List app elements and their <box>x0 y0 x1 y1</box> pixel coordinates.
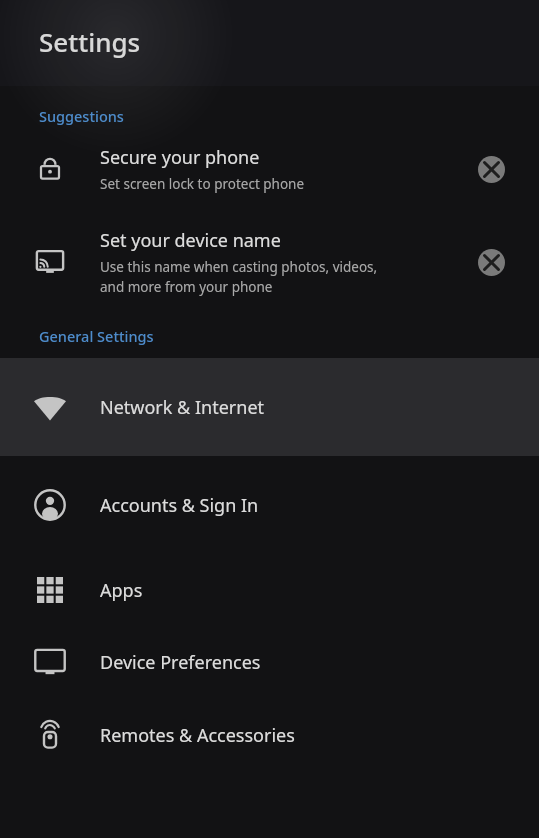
other: Cast device name <box>0 212 100 312</box>
button[interactable]: Apps <box>0 554 539 626</box>
staticText: General Settings <box>39 326 154 346</box>
button[interactable]: Device Preferences <box>0 626 539 698</box>
staticText: Set screen lock to protect phone <box>100 175 305 193</box>
staticText: Remotes & Accessories <box>100 723 295 748</box>
button[interactable]: Dismiss suggestion <box>443 126 539 212</box>
staticText: Apps <box>100 578 143 603</box>
button[interactable]: Cast device name <box>0 212 539 312</box>
staticText: Use this name when casting photos, video… <box>100 258 378 296</box>
button[interactable]: Screen lock <box>0 126 539 212</box>
button[interactable]: Network & Internet <box>0 358 539 456</box>
other: Screen lock <box>0 126 100 212</box>
button[interactable]: Remotes & Accessories <box>0 698 539 772</box>
staticText: Set your device name <box>100 228 281 253</box>
staticText: Device Preferences <box>100 650 261 675</box>
staticText: Suggestions <box>39 106 124 126</box>
staticText: Accounts & Sign In <box>100 493 259 518</box>
button[interactable]: Dismiss suggestion <box>443 212 539 312</box>
staticText: Secure your phone <box>100 145 260 170</box>
staticText: Settings <box>39 24 141 59</box>
button[interactable]: Accounts & Sign In <box>0 456 539 554</box>
staticText: Network & Internet <box>100 395 265 420</box>
